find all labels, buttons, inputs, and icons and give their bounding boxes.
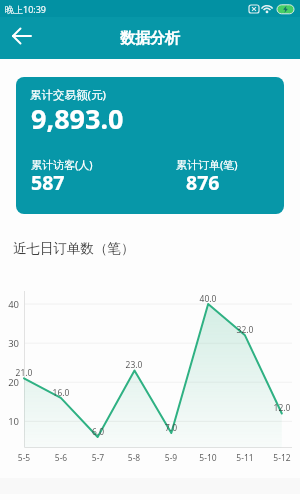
staticText: 20	[0, 376, 19, 389]
staticText: 21.0	[9, 367, 39, 379]
staticText: 32.0	[230, 324, 260, 336]
staticText: 12.0	[267, 402, 297, 414]
staticText: 7.0	[156, 422, 186, 434]
staticText: 5-11	[230, 452, 260, 464]
staticText: 累计访客(人)	[31, 157, 93, 172]
staticText: 876	[186, 169, 220, 196]
button[interactable]: 累计交易额(元)	[16, 77, 284, 214]
staticText: 近七日订单数（笔）	[13, 240, 135, 257]
staticText: 5-10	[193, 452, 223, 464]
staticText: 587	[31, 169, 65, 196]
staticText: 5-7	[83, 452, 113, 464]
staticText: 5-9	[156, 452, 186, 464]
staticText: 5-8	[119, 452, 149, 464]
staticText: 9,893.0	[31, 100, 124, 137]
staticText: 30	[0, 337, 19, 350]
staticText: 数据分析	[120, 29, 180, 48]
staticText: 晚上10:39	[5, 3, 47, 15]
staticText: 40	[0, 298, 19, 311]
staticText: 23.0	[119, 359, 149, 371]
staticText: 累计交易额(元)	[30, 87, 106, 103]
staticText: 10	[0, 415, 19, 428]
staticText: 5-12	[267, 452, 297, 464]
staticText: 40.0	[193, 293, 223, 305]
staticText: 5-5	[9, 452, 39, 464]
staticText: 5-6	[46, 452, 76, 464]
button[interactable]	[6, 22, 38, 54]
staticText: 16.0	[46, 387, 76, 399]
staticText: 累计订单(笔)	[176, 157, 238, 172]
staticText: 6.0	[83, 426, 113, 438]
